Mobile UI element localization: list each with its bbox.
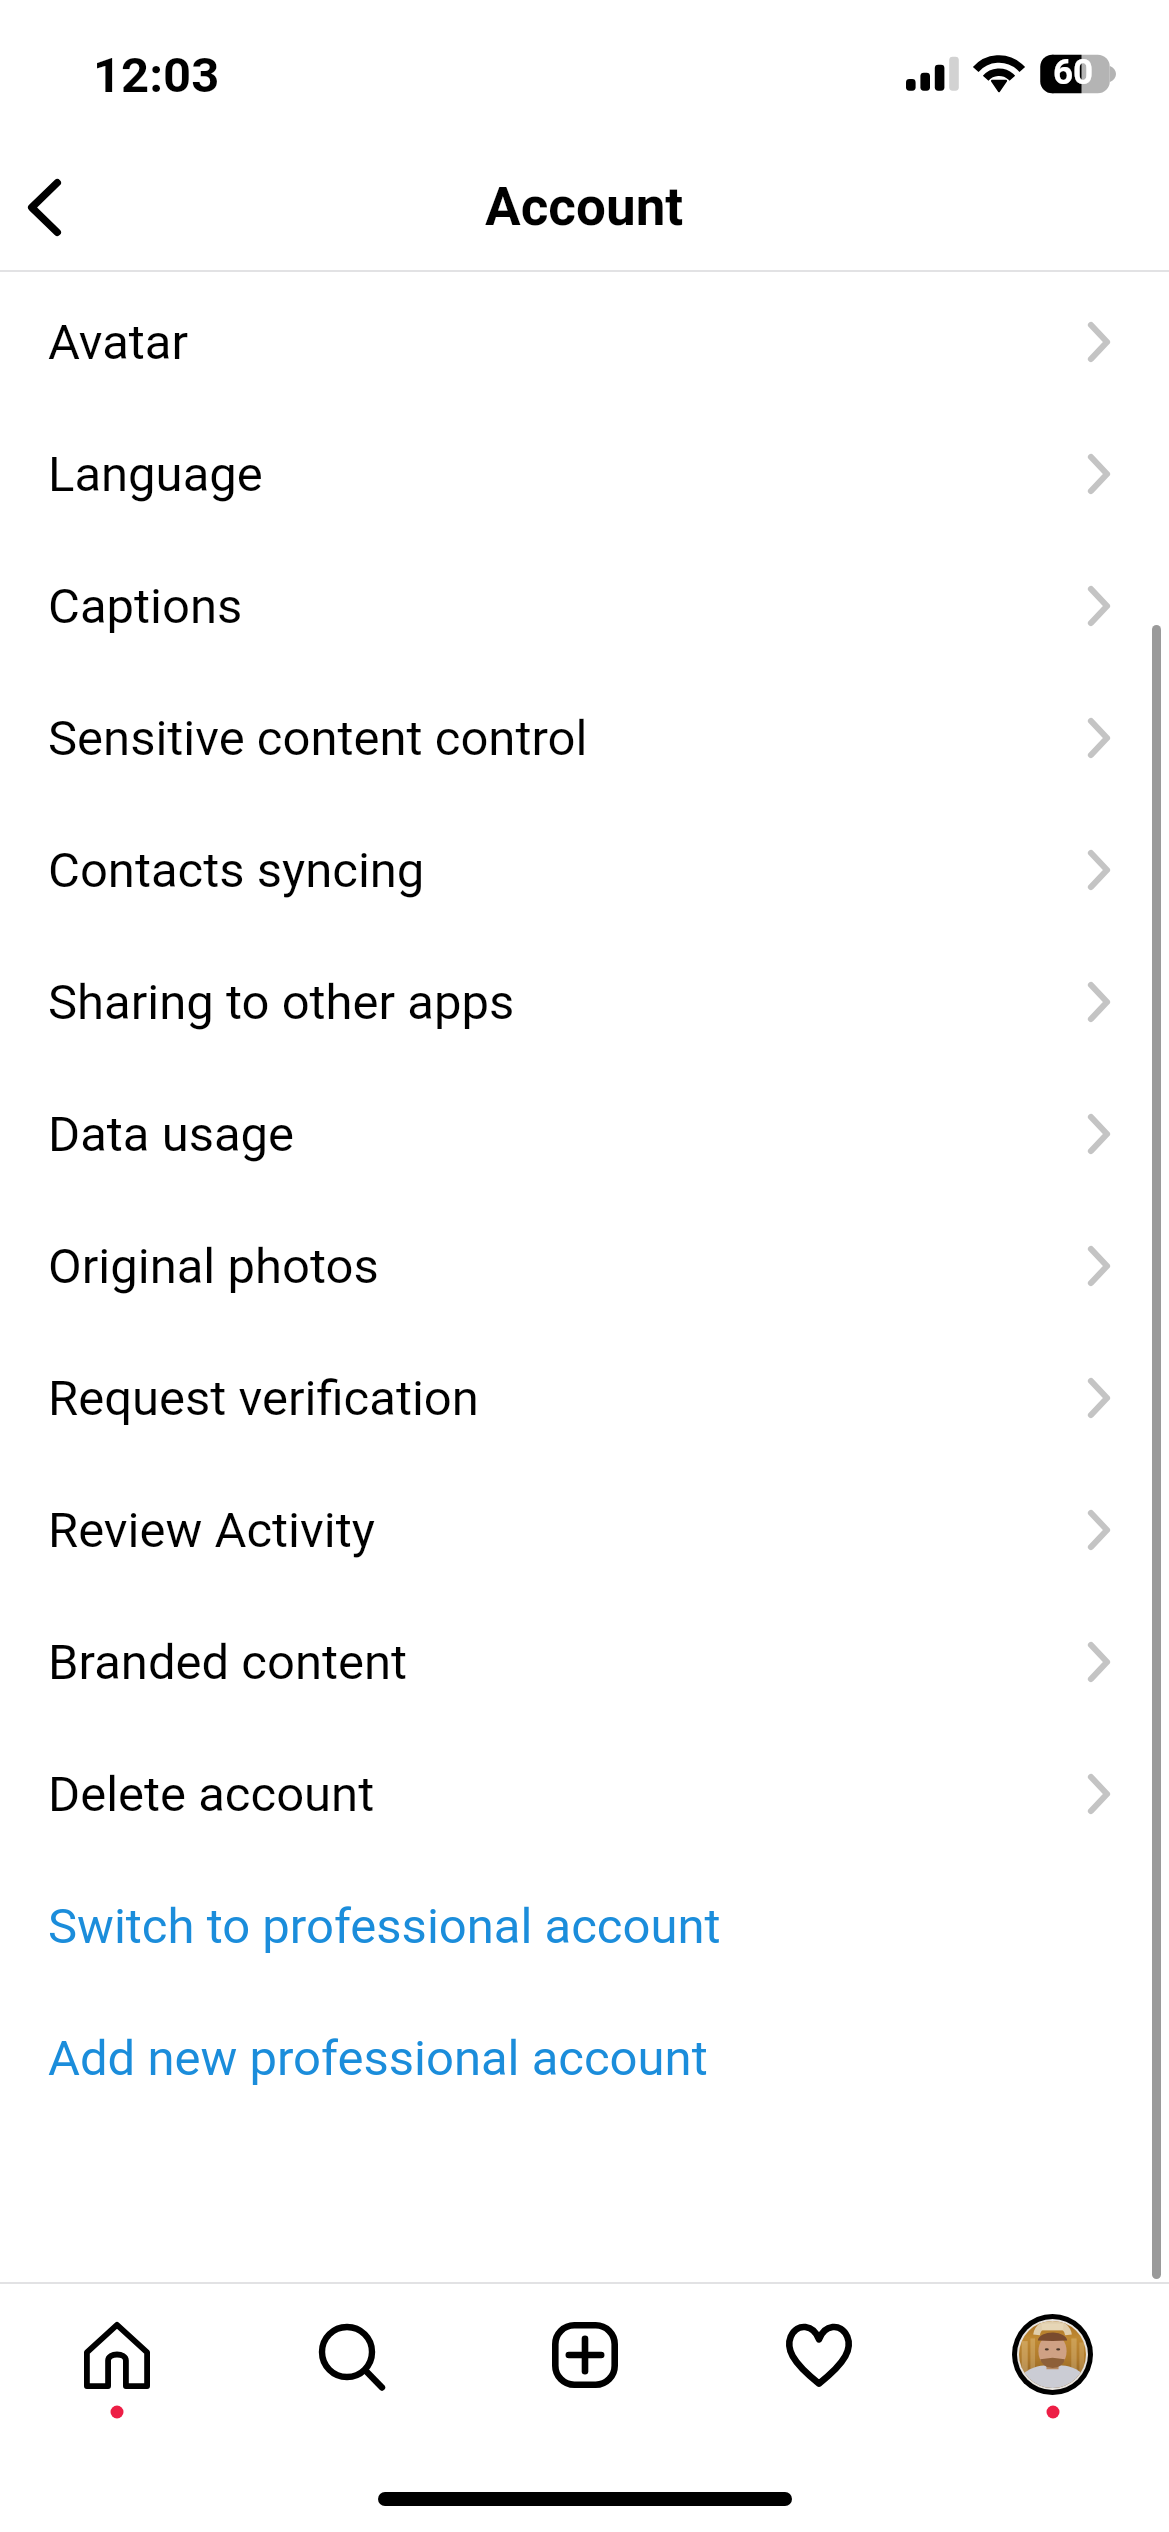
staticText: Sharing to other apps: [48, 974, 515, 1031]
button[interactable]: Home: [0, 2284, 234, 2444]
staticText: Language: [48, 446, 263, 503]
button[interactable]: Original photos: [0, 1200, 1169, 1332]
button[interactable]: Sensitive content control: [0, 672, 1169, 804]
button[interactable]: Language: [0, 408, 1169, 540]
staticText: Account: [485, 176, 684, 238]
button[interactable]: Delete account: [0, 1728, 1169, 1860]
staticText: Data usage: [48, 1106, 295, 1163]
button[interactable]: Avatar: [0, 276, 1169, 408]
staticText: Contacts syncing: [48, 842, 425, 899]
button[interactable]: Branded content: [0, 1596, 1169, 1728]
staticText: Captions: [48, 578, 243, 635]
button[interactable]: Create: [468, 2284, 702, 2444]
button[interactable]: Contacts syncing: [0, 804, 1169, 936]
button[interactable]: Search: [234, 2284, 468, 2444]
button[interactable]: Back: [0, 150, 118, 265]
button[interactable]: Profile: [936, 2284, 1169, 2444]
staticText: Switch to professional account: [48, 1898, 721, 1955]
staticText: 60: [1053, 52, 1094, 93]
button[interactable]: Review Activity: [0, 1464, 1169, 1596]
staticText: Request verification: [48, 1370, 479, 1427]
staticText: Avatar: [48, 314, 189, 371]
staticText: 12:03: [93, 47, 220, 104]
button[interactable]: Request verification: [0, 1332, 1169, 1464]
button[interactable]: Add new professional account: [0, 1992, 1169, 2124]
staticText: Branded content: [48, 1634, 408, 1691]
staticText: Add new professional account: [48, 2030, 708, 2087]
button[interactable]: Switch to professional account: [0, 1860, 1169, 1992]
button[interactable]: Activity: [702, 2284, 936, 2444]
staticText: Original photos: [48, 1238, 379, 1295]
staticText: Review Activity: [48, 1502, 375, 1559]
button[interactable]: Data usage: [0, 1068, 1169, 1200]
button[interactable]: Captions: [0, 540, 1169, 672]
staticText: Sensitive content control: [48, 710, 588, 767]
button[interactable]: Sharing to other apps: [0, 936, 1169, 1068]
staticText: Delete account: [48, 1766, 375, 1823]
